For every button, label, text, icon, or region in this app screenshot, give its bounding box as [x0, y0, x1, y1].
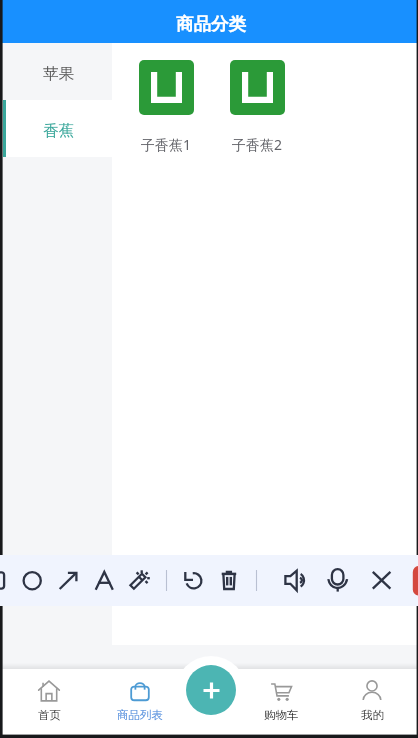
staticText: 购物车	[264, 708, 299, 722]
button[interactable]: 购物车	[236, 669, 326, 738]
button[interactable]: 首页	[4, 669, 94, 738]
button[interactable]: 香蕉	[0, 100, 112, 157]
staticText: 我的	[361, 708, 384, 722]
button[interactable]: 商品列表	[95, 669, 185, 738]
button[interactable]: 子香蕉2	[230, 60, 285, 154]
button[interactable]: 我的	[327, 669, 417, 738]
button[interactable]: 子香蕉1	[139, 60, 194, 154]
staticText: 首页	[38, 708, 61, 722]
button[interactable]: Add	[186, 665, 236, 715]
staticText: 子香蕉1	[141, 135, 192, 154]
button[interactable]: 苹果	[0, 43, 112, 100]
other: Annotation toolbar	[0, 555, 418, 606]
staticText: 苹果	[43, 64, 74, 84]
staticText: 商品分类	[176, 13, 246, 35]
staticText: 子香蕉2	[232, 135, 283, 154]
staticText: 商品列表	[117, 708, 163, 722]
staticText: 香蕉	[43, 121, 74, 141]
